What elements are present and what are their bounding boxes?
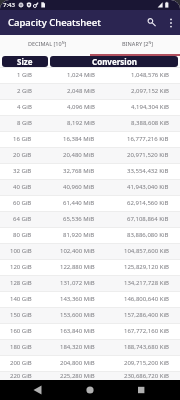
staticText: 62,914,560 KiB [127,199,169,207]
staticText: 2,097,152 KiB [131,87,169,95]
button[interactable]: 80 GiB [0,227,180,243]
staticText: 40,960 MiB [63,183,95,191]
staticText: 16,384 MiB [63,135,95,143]
staticText: 180 GiB [10,343,32,351]
staticText: 32 GiB [13,167,32,175]
button[interactable]: Conversion [50,56,178,67]
staticText: 220 GiB [10,372,32,380]
staticText: 167,772,160 KiB [124,327,169,335]
button[interactable]: 220 GiB [0,371,180,380]
staticText: 8,192 MiB [67,119,95,127]
button[interactable]: 40 GiB [0,179,180,195]
staticText: 4 GiB [17,103,32,111]
button[interactable]: 60 GiB [0,195,180,211]
staticText: 160 GiB [10,327,32,335]
staticText: 2 GiB [17,87,32,95]
button[interactable]: 140 GiB [0,291,180,307]
staticText: 83,886,080 KiB [127,231,169,239]
staticText: 40 GiB [13,183,32,191]
staticText: 146,800,640 KiB [124,295,169,303]
staticText: 100 GiB [10,247,32,255]
staticText: 184,320 MiB [60,343,95,351]
staticText: 188,743,680 KiB [124,343,169,351]
staticText: 153,600 MiB [60,311,95,319]
staticText: Capacity Cheatsheet [8,16,101,29]
button[interactable]: 200 GiB [0,355,180,371]
staticText: 4,194,304 KiB [131,103,169,111]
staticText: 163,840 MiB [60,327,95,335]
staticText: 64 GiB [13,215,32,223]
staticText: 204,800 MiB [60,359,95,367]
staticText: 32,768 MiB [63,167,95,175]
staticText: 8,388,608 KiB [131,119,169,127]
staticText: 209,715,200 KiB [124,359,169,367]
staticText: 140 GiB [10,295,32,303]
button[interactable]: 1 GiB [0,67,180,83]
staticText: 4,096 MiB [67,103,95,111]
staticText: 131,072 MiB [60,279,95,287]
staticText: Conversion [92,56,137,67]
button[interactable]: 32 GiB [0,163,180,179]
staticText: 104,857,600 KiB [124,247,169,255]
staticText: BINARY [2ᴺ] [122,40,154,47]
button[interactable]: 4 GiB [0,99,180,115]
button[interactable]: 150 GiB [0,307,180,323]
staticText: 225,280 MiB [60,372,95,380]
staticText: 125,829,120 KiB [124,263,169,271]
staticText: 20,971,520 KiB [127,151,169,159]
staticText: 150 GiB [10,311,32,319]
staticText: 67,108,864 KiB [127,215,169,223]
button[interactable]: 16 GiB [0,131,180,147]
staticText: 41,943,040 KiB [127,183,169,191]
staticText: 1 GiB [17,71,32,79]
button[interactable]: DECIMAL [10ᴺ] [0,35,90,56]
button[interactable]: 180 GiB [0,339,180,355]
button[interactable]: 160 GiB [0,323,180,339]
staticText: 1,024 MiB [67,71,95,79]
button[interactable]: 20 GiB [0,147,180,163]
staticText: Size [17,56,33,67]
staticText: 7:43 [3,1,15,9]
staticText: 143,360 MiB [60,295,95,303]
staticText: 60 GiB [13,199,32,207]
staticText: 8 GiB [17,119,32,127]
button[interactable]: 128 GiB [0,275,180,291]
staticText: 65,536 MiB [63,215,95,223]
staticText: 20 GiB [13,151,32,159]
staticText: 16 GiB [13,135,32,143]
staticText: 16,777,216 KiB [127,135,169,143]
staticText: 20,480 MiB [63,151,95,159]
staticText: 80 GiB [13,231,32,239]
staticText: 1,048,576 KiB [131,71,169,79]
button[interactable]: 64 GiB [0,211,180,227]
staticText: 120 GiB [10,263,32,271]
button[interactable]: 8 GiB [0,115,180,131]
button[interactable]: BINARY [2ᴺ] [90,35,180,56]
staticText: 61,440 MiB [63,199,95,207]
button[interactable]: 120 GiB [0,259,180,275]
staticText: 81,920 MiB [63,231,95,239]
staticText: 2,048 MiB [67,87,95,95]
staticText: 200 GiB [10,359,32,367]
staticText: 157,286,400 KiB [124,311,169,319]
button[interactable]: 2 GiB [0,83,180,99]
staticText: 33,554,432 KiB [127,167,169,175]
button[interactable]: More options [161,10,180,35]
staticText: 128 GiB [10,279,32,287]
button[interactable]: Size [2,56,48,67]
staticText: 122,880 MiB [60,263,95,271]
staticText: 134,217,728 KiB [124,279,169,287]
staticText: 230,686,720 KiB [124,372,169,380]
staticText: DECIMAL [10ᴺ] [28,40,67,47]
staticText: 102,400 MiB [60,247,95,255]
button[interactable]: Search [142,10,161,35]
button[interactable]: 100 GiB [0,243,180,259]
